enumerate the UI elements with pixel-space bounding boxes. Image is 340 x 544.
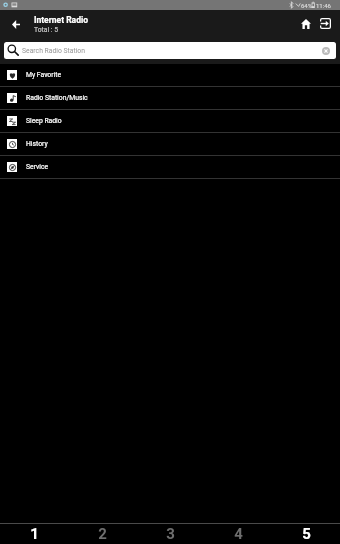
button[interactable]: Back [0, 10, 32, 42]
staticText: Sleep Radio [26, 117, 62, 125]
button[interactable]: Radio Station/Music [0, 87, 340, 109]
button[interactable]: Exit [317, 10, 339, 42]
staticText: My Favorite [26, 71, 62, 79]
button[interactable]: 1 [0, 524, 68, 544]
staticText: Total : 5 [34, 26, 59, 34]
button[interactable]: 3 [136, 524, 204, 544]
staticText: 5 [302, 525, 311, 543]
button[interactable]: Home [295, 10, 317, 42]
button[interactable]: 4 [204, 524, 272, 544]
button[interactable]: Search Radio Station [4, 42, 336, 59]
staticText: 4 [234, 525, 243, 543]
button[interactable]: 5 [272, 524, 340, 544]
staticText: 1 [30, 525, 39, 543]
staticText: Search Radio Station [22, 47, 85, 55]
staticText: 64% [301, 2, 313, 9]
staticText: History [26, 140, 48, 148]
staticText: Service [26, 163, 49, 171]
button[interactable]: Sleep Radio [0, 110, 340, 132]
staticText: 11:46 [316, 2, 331, 9]
button[interactable]: 2 [68, 524, 136, 544]
button[interactable]: History [0, 133, 340, 155]
staticText: 2 [98, 525, 107, 543]
button[interactable]: My Favorite [0, 64, 340, 86]
staticText: 3 [166, 525, 175, 543]
staticText: Radio Station/Music [26, 94, 88, 102]
staticText: Internet Radio [34, 15, 88, 25]
button[interactable]: Service [0, 156, 340, 178]
button[interactable]: Clear search [320, 45, 331, 56]
